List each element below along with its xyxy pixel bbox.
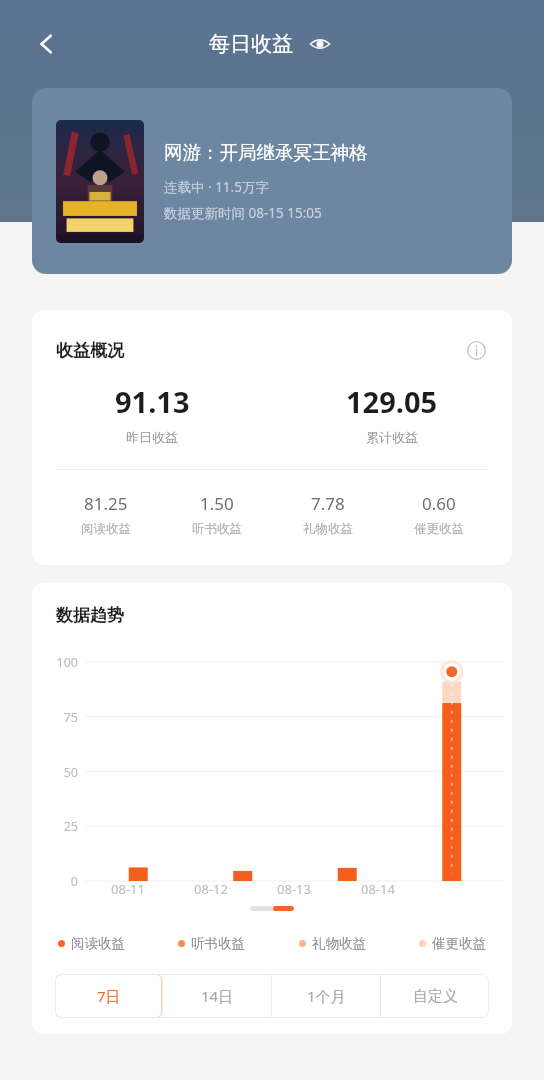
staticText: 08-13 — [277, 880, 311, 898]
staticText: 25 — [46, 818, 78, 835]
staticText: 催更收益 — [432, 935, 486, 952]
staticText: 听书收益 — [192, 521, 242, 537]
staticText: 收益概况 — [56, 340, 124, 361]
button[interactable]: 网游：开局继承冥王神格 — [32, 88, 512, 274]
staticText: 连载中 · 11.5万字 — [164, 178, 269, 196]
staticText: 网游：开局继承冥王神格 — [164, 141, 368, 164]
staticText: 1个月 — [307, 986, 346, 1006]
staticText: 礼物收益 — [303, 521, 353, 537]
staticText: 7.78 — [311, 492, 345, 515]
button[interactable]: 7日 — [55, 974, 162, 1018]
staticText: 08-14 — [361, 880, 395, 898]
button[interactable]: 14日 — [163, 974, 271, 1018]
staticText: 听书收益 — [191, 935, 245, 952]
staticText: 14日 — [201, 986, 234, 1006]
staticText: 129.05 — [346, 382, 438, 421]
staticText: 7日 — [97, 986, 121, 1006]
staticText: 0 — [46, 873, 78, 890]
staticText: 75 — [46, 709, 78, 726]
staticText: 累计收益 — [366, 429, 418, 445]
staticText: 自定义 — [413, 987, 458, 1006]
staticText: 每日收益 — [209, 31, 293, 57]
staticText: 0.60 — [422, 492, 456, 515]
staticText: 08-11 — [111, 880, 145, 898]
button[interactable]: Back — [18, 16, 74, 72]
button[interactable]: Toggle visibility — [305, 29, 335, 59]
staticText: 91.13 — [115, 382, 190, 421]
button[interactable]: 1个月 — [272, 974, 380, 1018]
button[interactable]: 自定义 — [381, 974, 489, 1018]
staticText: 数据趋势 — [56, 605, 124, 626]
staticText: 08-12 — [194, 880, 228, 898]
staticText: 100 — [46, 654, 78, 671]
staticText: 礼物收益 — [312, 935, 366, 952]
staticText: 1.50 — [200, 492, 234, 515]
staticText: 阅读收益 — [71, 935, 125, 952]
staticText: 催更收益 — [414, 521, 464, 537]
button[interactable]: Info — [462, 336, 490, 364]
staticText: 阅读收益 — [81, 521, 131, 537]
staticText: 昨日收益 — [126, 429, 178, 445]
staticText: 50 — [46, 764, 78, 781]
staticText: 数据更新时间 08-15 15:05 — [164, 204, 322, 222]
staticText: 81.25 — [84, 492, 128, 515]
